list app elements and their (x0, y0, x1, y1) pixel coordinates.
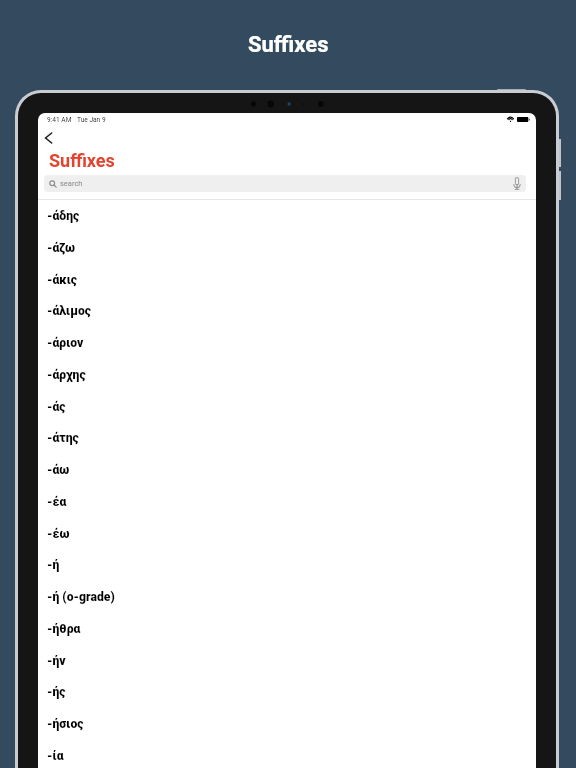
button[interactable]: -άς (38, 391, 536, 423)
staticText: -άτης (47, 431, 79, 445)
staticText: -ή (o-grade) (47, 590, 115, 604)
staticText: 9:41 AM (47, 116, 72, 124)
staticText: -άριον (47, 336, 84, 350)
button[interactable]: -άριον (38, 327, 536, 359)
staticText: -ήσιος (47, 717, 84, 731)
staticText: -άς (47, 400, 66, 414)
button[interactable]: -ή (o-grade) (38, 581, 536, 613)
button[interactable]: -έα (38, 486, 536, 518)
staticText: -ήθρα (47, 622, 81, 636)
staticText: -ής (47, 685, 66, 699)
button[interactable]: -άλιμος (38, 295, 536, 327)
staticText: search (60, 179, 83, 188)
staticText: -ή (47, 558, 60, 572)
staticText: -άρχης (47, 368, 86, 382)
staticText: -έα (47, 495, 67, 509)
staticText: -άκις (47, 273, 77, 287)
button[interactable]: Back (38, 126, 60, 150)
staticText: -έω (47, 527, 70, 541)
button[interactable]: -έω (38, 518, 536, 550)
button[interactable]: -ήσιος (38, 708, 536, 740)
button[interactable]: -άκις (38, 264, 536, 296)
staticText: -ία (47, 749, 64, 763)
button[interactable]: -ία (38, 740, 536, 768)
button[interactable]: -άδης (38, 200, 536, 232)
staticText: Tue Jan 9 (77, 116, 106, 124)
button[interactable]: -άρχης (38, 359, 536, 391)
button[interactable]: -ής (38, 676, 536, 708)
button[interactable]: -ή (38, 549, 536, 581)
staticText: Suffixes (49, 150, 115, 171)
button[interactable]: -άω (38, 454, 536, 486)
staticText: -άω (47, 463, 70, 477)
staticText: -άλιμος (47, 304, 91, 318)
button[interactable]: -άτης (38, 422, 536, 454)
button[interactable]: search (44, 175, 526, 192)
staticText: -ήν (47, 654, 66, 668)
button[interactable]: -ήθρα (38, 613, 536, 645)
staticText: -άζω (47, 241, 76, 255)
staticText: Suffixes (248, 32, 329, 58)
button[interactable]: -άζω (38, 232, 536, 264)
button[interactable]: -ήν (38, 645, 536, 677)
staticText: -άδης (47, 209, 80, 223)
